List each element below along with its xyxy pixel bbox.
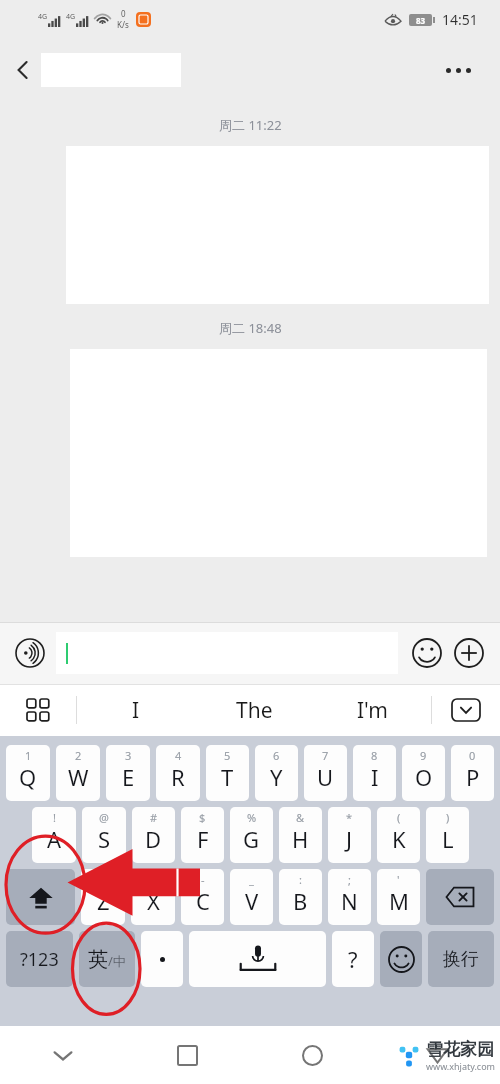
button[interactable]: (: [377, 807, 420, 863]
button[interactable]: 英: [79, 931, 135, 987]
button[interactable]: *: [328, 807, 371, 863]
button[interactable]: Emoji: [408, 634, 446, 672]
button[interactable]: _: [230, 869, 273, 925]
staticText: P: [466, 762, 480, 792]
button[interactable]: 1: [6, 745, 50, 801]
button[interactable]: $: [181, 807, 224, 863]
button[interactable]: ": [131, 869, 175, 925]
button[interactable]: -: [181, 869, 224, 925]
staticText: 14:51: [442, 10, 478, 29]
button[interactable]: Recents: [125, 1026, 250, 1084]
staticText: L: [442, 824, 454, 854]
button[interactable]: ?123: [6, 931, 73, 987]
staticText: -: [201, 872, 205, 887]
staticText: 周二 11:22: [219, 116, 282, 134]
staticText: D: [145, 824, 162, 854]
button[interactable]: Hide keyboard: [432, 684, 500, 736]
button[interactable]: 3: [106, 745, 150, 801]
staticText: @: [99, 810, 109, 825]
button[interactable]: I'm: [313, 684, 431, 736]
staticText: V: [245, 886, 259, 916]
button[interactable]: Home: [250, 1026, 375, 1084]
button[interactable]: Voice input: [12, 635, 48, 671]
button[interactable]: 6: [255, 745, 298, 801]
button[interactable]: More options: [436, 48, 480, 92]
button[interactable]: [56, 632, 398, 674]
button[interactable]: 2: [56, 745, 100, 801]
staticText: ': [397, 872, 400, 887]
staticText: G: [243, 824, 260, 854]
staticText: 4G: [66, 12, 76, 22]
button[interactable]: @: [82, 807, 126, 863]
button[interactable]: ;: [328, 869, 371, 925]
button[interactable]: Period: [141, 931, 183, 987]
button[interactable]: More functions: [450, 634, 488, 672]
button[interactable]: Emoji keyboard: [380, 931, 422, 987]
staticText: www.xhjaty.com: [426, 1060, 496, 1072]
staticText: W: [68, 762, 89, 792]
button[interactable]: #: [132, 807, 175, 863]
button[interactable]: 5: [206, 745, 249, 801]
staticText: ): [446, 810, 450, 825]
staticText: Z: [97, 886, 110, 916]
button[interactable]: Hide keyboard: [0, 1026, 125, 1084]
button[interactable]: Space: [189, 931, 326, 987]
staticText: B: [293, 886, 308, 916]
button[interactable]: Back: [0, 47, 46, 93]
button[interactable]: 9: [402, 745, 445, 801]
staticText: R: [171, 762, 185, 792]
staticText: O: [415, 762, 433, 792]
button[interactable]: Delete: [426, 869, 494, 925]
staticText: 3: [125, 748, 132, 763]
button[interactable]: 7: [304, 745, 347, 801]
staticText: H: [292, 824, 309, 854]
button[interactable]: :: [279, 869, 322, 925]
staticText: :: [299, 872, 302, 887]
staticText: 8: [371, 748, 378, 763]
button[interactable]: !: [32, 807, 76, 863]
staticText: K/s: [117, 19, 129, 30]
staticText: S: [98, 824, 111, 854]
staticText: /中: [108, 952, 126, 970]
staticText: K: [392, 824, 406, 854]
staticText: ?: [348, 944, 358, 974]
staticText: %: [247, 810, 257, 825]
button[interactable]: The: [195, 684, 313, 736]
staticText: Y: [270, 762, 283, 792]
staticText: 2: [75, 748, 82, 763]
button[interactable]: Keyboard menu: [0, 684, 76, 736]
staticText: The: [236, 696, 273, 725]
button[interactable]: Back: [375, 1026, 500, 1084]
staticText: 雪花家园: [426, 1039, 494, 1060]
button[interactable]: ): [426, 807, 469, 863]
button[interactable]: ': [81, 869, 125, 925]
staticText: 83: [416, 15, 426, 26]
staticText: 周二 18:48: [219, 319, 282, 337]
staticText: 4: [175, 748, 182, 763]
staticText: 换行: [443, 948, 479, 971]
button[interactable]: 8: [353, 745, 396, 801]
button[interactable]: 4: [156, 745, 200, 801]
staticText: _: [249, 872, 254, 887]
staticText: N: [341, 886, 358, 916]
button[interactable]: I: [77, 684, 195, 736]
button[interactable]: 换行: [428, 931, 494, 987]
staticText: 0: [121, 8, 126, 19]
staticText: X: [147, 886, 160, 916]
button[interactable]: ?: [332, 931, 374, 987]
button[interactable]: %: [230, 807, 273, 863]
button[interactable]: 0: [451, 745, 494, 801]
staticText: 7: [322, 748, 329, 763]
staticText: 英: [88, 947, 108, 972]
staticText: A: [47, 824, 62, 854]
button[interactable]: ': [377, 869, 420, 925]
staticText: U: [317, 762, 334, 792]
staticText: I'm: [357, 696, 388, 725]
button[interactable]: Shift: [6, 869, 75, 925]
staticText: !: [53, 810, 56, 825]
button[interactable]: &: [279, 807, 322, 863]
staticText: ?123: [20, 947, 59, 972]
